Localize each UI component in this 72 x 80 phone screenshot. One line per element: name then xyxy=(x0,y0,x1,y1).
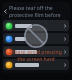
staticText: Please avoid pressing xyxy=(10,49,62,56)
staticText: Please tear off the xyxy=(9,5,53,12)
button[interactable] xyxy=(3,20,69,31)
staticText: the screen hard xyxy=(17,56,55,63)
button[interactable] xyxy=(3,46,69,57)
staticText: protective film before use xyxy=(9,12,68,18)
button[interactable] xyxy=(3,33,69,44)
button[interactable]: Back xyxy=(2,5,9,18)
button[interactable] xyxy=(3,59,69,70)
